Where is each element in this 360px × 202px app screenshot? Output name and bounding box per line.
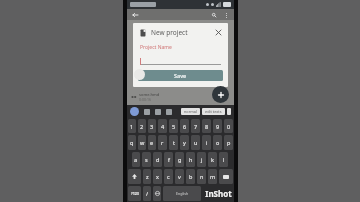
button[interactable] (227, 108, 231, 115)
button[interactable]: Symbols (128, 186, 141, 201)
button[interactable]: 9 (213, 119, 222, 133)
button[interactable]: t (169, 135, 178, 150)
button[interactable]: 8 (202, 119, 211, 133)
staticText: 0 (227, 123, 231, 130)
button[interactable]: n (197, 169, 206, 184)
button[interactable]: p (224, 135, 233, 150)
staticText: f (168, 156, 170, 163)
button[interactable]: k (208, 152, 217, 167)
button[interactable]: / (143, 186, 151, 201)
staticText: a (134, 156, 138, 163)
staticText: m (210, 173, 216, 180)
button[interactable]: j (197, 152, 206, 167)
staticText: o (216, 139, 220, 146)
staticText: p (227, 139, 231, 146)
button[interactable]: Backspace (219, 169, 233, 184)
staticText: l (223, 156, 225, 163)
button[interactable]: a (132, 152, 140, 167)
button[interactable]: y (180, 135, 189, 150)
staticText: c (167, 173, 170, 180)
button[interactable]: clipboard (165, 108, 172, 115)
staticText: Project Name (140, 44, 172, 51)
button[interactable]: Back (131, 11, 139, 19)
button[interactable]: normal (184, 108, 197, 115)
button[interactable]: l (219, 152, 228, 167)
button[interactable]: 3 (148, 119, 156, 133)
button[interactable]: d (153, 152, 162, 167)
button[interactable]: Language (153, 186, 161, 201)
staticText: 7 (194, 123, 198, 130)
staticText: some.hmd (139, 92, 160, 97)
staticText: 3 (150, 123, 154, 130)
button[interactable]: v (175, 169, 184, 184)
staticText: e (150, 139, 154, 146)
staticText: 1 (130, 123, 134, 130)
staticText: normal (184, 109, 197, 114)
button[interactable]: o (213, 135, 222, 150)
staticText: 9 (216, 123, 220, 130)
staticText: w (140, 139, 145, 146)
staticText: u (194, 139, 198, 146)
staticText: 2 (140, 123, 144, 130)
staticText: 6 (183, 123, 187, 130)
button[interactable]: Gboard (130, 107, 139, 116)
button[interactable]: 1 (128, 119, 136, 133)
staticText: r (161, 139, 164, 146)
staticText: 8 (205, 123, 209, 130)
button[interactable]: m (208, 169, 217, 184)
button[interactable]: 4 (158, 119, 167, 133)
button[interactable]: sticker (154, 108, 161, 115)
button[interactable]: b (186, 169, 195, 184)
staticText: 0:00:16 (139, 97, 151, 102)
button[interactable]: r (158, 135, 167, 150)
button[interactable]: s (142, 152, 151, 167)
button[interactable]: GIF (143, 108, 150, 115)
button[interactable]: Shift (128, 169, 141, 184)
staticText: edit texts (205, 109, 222, 114)
staticText: 5 (172, 123, 176, 130)
staticText: g (178, 156, 182, 163)
button[interactable]: e (148, 135, 156, 150)
button[interactable]: edit texts (205, 108, 222, 115)
staticText: k (211, 156, 214, 163)
staticText: x (156, 173, 159, 180)
staticText: New project (151, 28, 188, 37)
staticText: d (156, 156, 160, 163)
button[interactable]: 5 (169, 119, 178, 133)
button[interactable]: More options (222, 11, 230, 19)
button[interactable]: h (186, 152, 195, 167)
button[interactable]: c (164, 169, 173, 184)
staticText: English (176, 191, 189, 196)
staticText: / (146, 190, 149, 197)
staticText: j (201, 156, 203, 163)
button[interactable]: 7 (191, 119, 200, 133)
button[interactable]: Save (138, 70, 223, 81)
button[interactable]: English (163, 186, 201, 201)
button[interactable]: w (138, 135, 146, 150)
button[interactable]: 6 (180, 119, 189, 133)
staticText: s (145, 156, 148, 163)
staticText: n (200, 173, 204, 180)
button[interactable]: New project (212, 86, 229, 103)
button[interactable]: 2 (138, 119, 146, 133)
button[interactable]: z (143, 169, 151, 184)
button[interactable]: g (175, 152, 184, 167)
staticText: z (146, 173, 149, 180)
button[interactable]: f (164, 152, 173, 167)
staticText: h (189, 156, 193, 163)
button[interactable]: q (128, 135, 136, 150)
staticText: v (178, 173, 181, 180)
staticText: 4 (161, 123, 165, 130)
button[interactable]: i (202, 135, 211, 150)
button[interactable]: x (153, 169, 162, 184)
staticText: b (189, 173, 193, 180)
staticText: ?123 (131, 191, 139, 196)
button[interactable]: u (191, 135, 200, 150)
button[interactable]: Close (214, 28, 223, 37)
staticText: t (173, 139, 175, 146)
button[interactable]: 0 (224, 119, 233, 133)
staticText: i (206, 139, 208, 146)
button[interactable]: Search (210, 11, 218, 19)
staticText: q (130, 139, 134, 146)
staticText: Save (174, 72, 187, 79)
